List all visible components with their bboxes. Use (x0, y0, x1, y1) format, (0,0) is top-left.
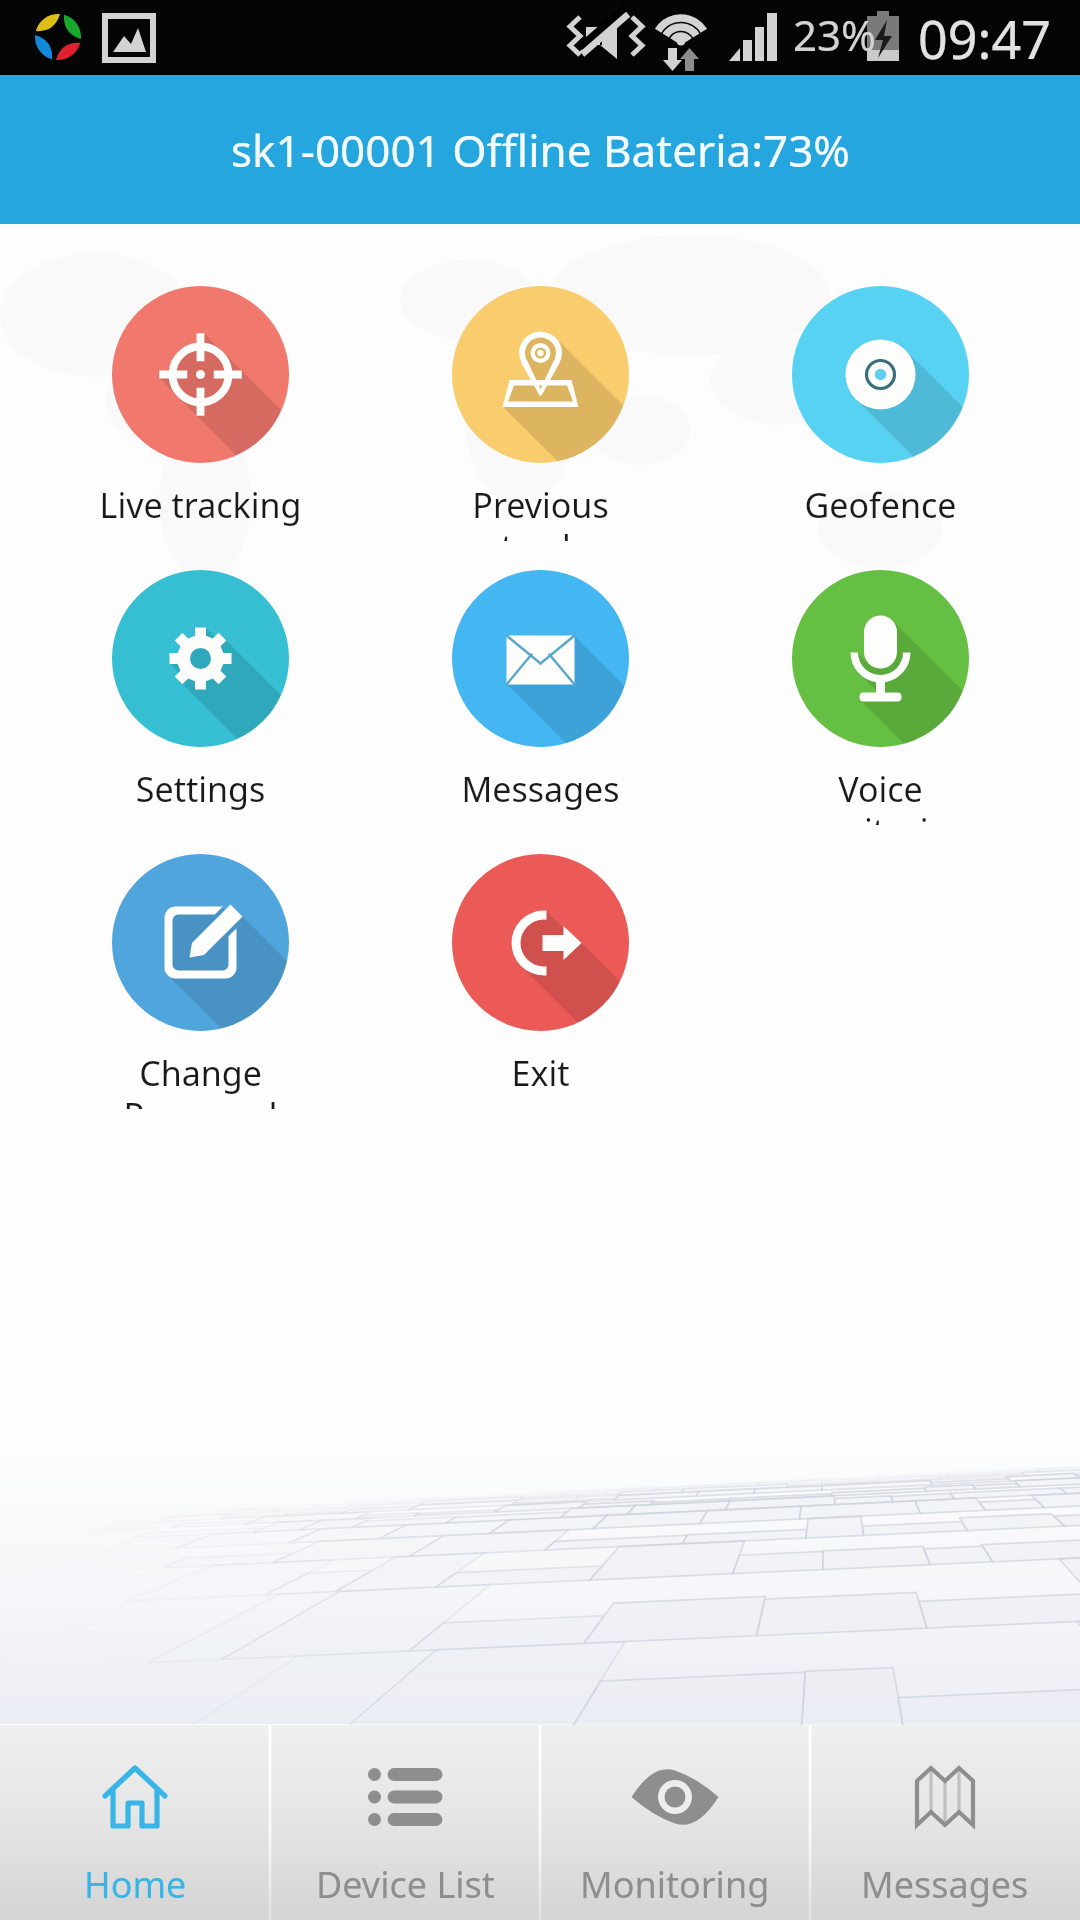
staticText: Device List (316, 1860, 495, 1909)
button[interactable]: Home (0, 1725, 270, 1920)
staticText: Messages (433, 766, 648, 812)
button[interactable]: Live tracking (30, 286, 370, 541)
staticText: Home (84, 1860, 187, 1909)
staticText: Change Password (93, 1050, 308, 1109)
staticText: Monitoring (580, 1860, 770, 1909)
button[interactable]: Settings (30, 570, 370, 825)
button[interactable]: Previous track (370, 286, 710, 541)
button[interactable]: Device List (270, 1725, 540, 1920)
staticText: Messages (861, 1860, 1029, 1909)
button[interactable]: Change Password (30, 854, 370, 1109)
staticText: Voice monitoring (773, 766, 988, 825)
staticText: Live tracking (93, 482, 308, 528)
staticText: Settings (93, 766, 308, 812)
button[interactable]: Messages (810, 1725, 1080, 1920)
staticText: 09:47 (918, 3, 1051, 74)
button[interactable]: Monitoring (540, 1725, 810, 1920)
staticText: Geofence (773, 482, 988, 528)
staticText: 23% (793, 6, 876, 63)
staticText: Exit (433, 1050, 648, 1096)
button[interactable]: Voice monitoring (710, 570, 1050, 825)
button[interactable]: Exit (370, 854, 710, 1109)
staticText: sk1-00001 Offline Bateria:73% (231, 120, 850, 180)
button[interactable]: Geofence (710, 286, 1050, 541)
staticText: Previous track (433, 482, 648, 541)
button[interactable]: Messages (370, 570, 710, 825)
